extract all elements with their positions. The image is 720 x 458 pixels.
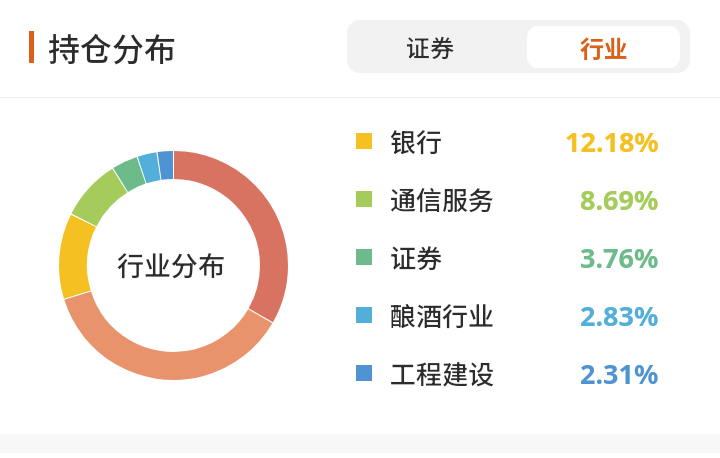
button[interactable]: 证券 [347,20,513,73]
staticText: 行业分布 [117,245,225,284]
staticText: 证券 [390,238,443,276]
staticText: 12.18% [565,123,659,160]
button[interactable]: 银行 [356,112,659,170]
staticText: 工程建设 [390,354,495,392]
staticText: 2.83% [580,297,659,334]
button[interactable]: 行业 [527,26,680,68]
staticText: 证券 [406,29,454,64]
staticText: 2.31% [580,355,659,392]
button[interactable]: 工程建设 [356,344,659,402]
button[interactable]: 证券 [356,228,659,286]
staticText: 3.76% [580,239,659,276]
staticText: 行业 [580,30,628,65]
button[interactable]: 酿酒行业 [356,286,659,344]
staticText: 持仓分布 [48,24,177,70]
staticText: 酿酒行业 [390,296,495,334]
button[interactable]: 通信服务 [356,170,659,228]
staticText: 通信服务 [390,180,495,218]
staticText: 银行 [390,122,443,160]
staticText: 8.69% [580,181,659,218]
